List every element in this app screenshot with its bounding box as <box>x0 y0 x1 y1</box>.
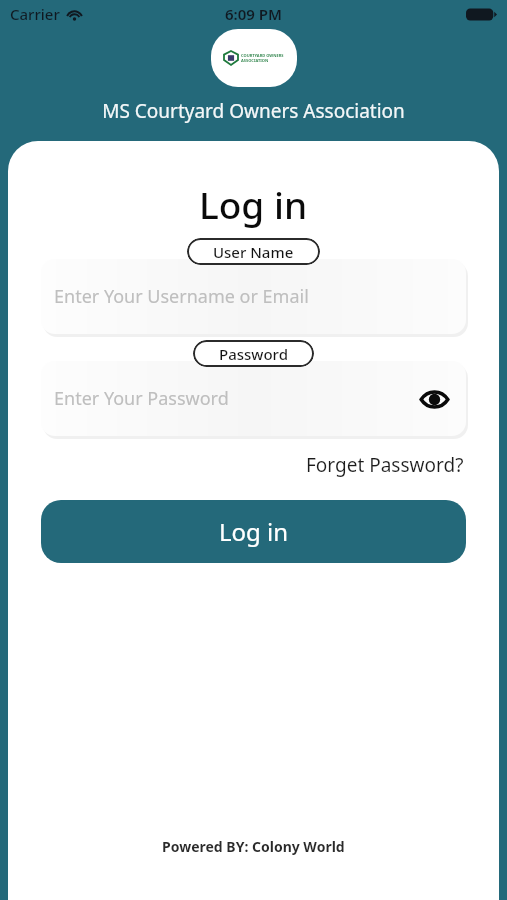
staticText: ASSOCIATION <box>241 58 269 63</box>
staticText: Log in <box>199 179 308 229</box>
button[interactable]: Show password <box>415 380 453 418</box>
staticText: Log in <box>219 515 289 548</box>
staticText: Carrier <box>10 4 60 24</box>
staticText: Enter Your Password <box>54 386 415 411</box>
staticText: Powered BY: Colony World <box>162 837 345 856</box>
button[interactable]: Password <box>193 340 314 367</box>
button[interactable]: User Name <box>187 238 320 265</box>
button[interactable]: Enter Your Password <box>41 361 466 436</box>
staticText: User Name <box>213 242 294 262</box>
button[interactable]: Forget Password? <box>304 448 466 482</box>
staticText: Enter Your Username or Email <box>54 284 453 309</box>
staticText: Password <box>219 344 288 364</box>
staticText: MS Courtyard Owners Association <box>102 98 405 124</box>
button[interactable]: Log in <box>41 500 466 563</box>
staticText: COURTYARD OWNERS <box>241 53 284 58</box>
staticText: Forget Password? <box>306 452 464 478</box>
staticText: 6:09 PM <box>225 4 282 24</box>
button[interactable]: Enter Your Username or Email <box>41 259 466 334</box>
